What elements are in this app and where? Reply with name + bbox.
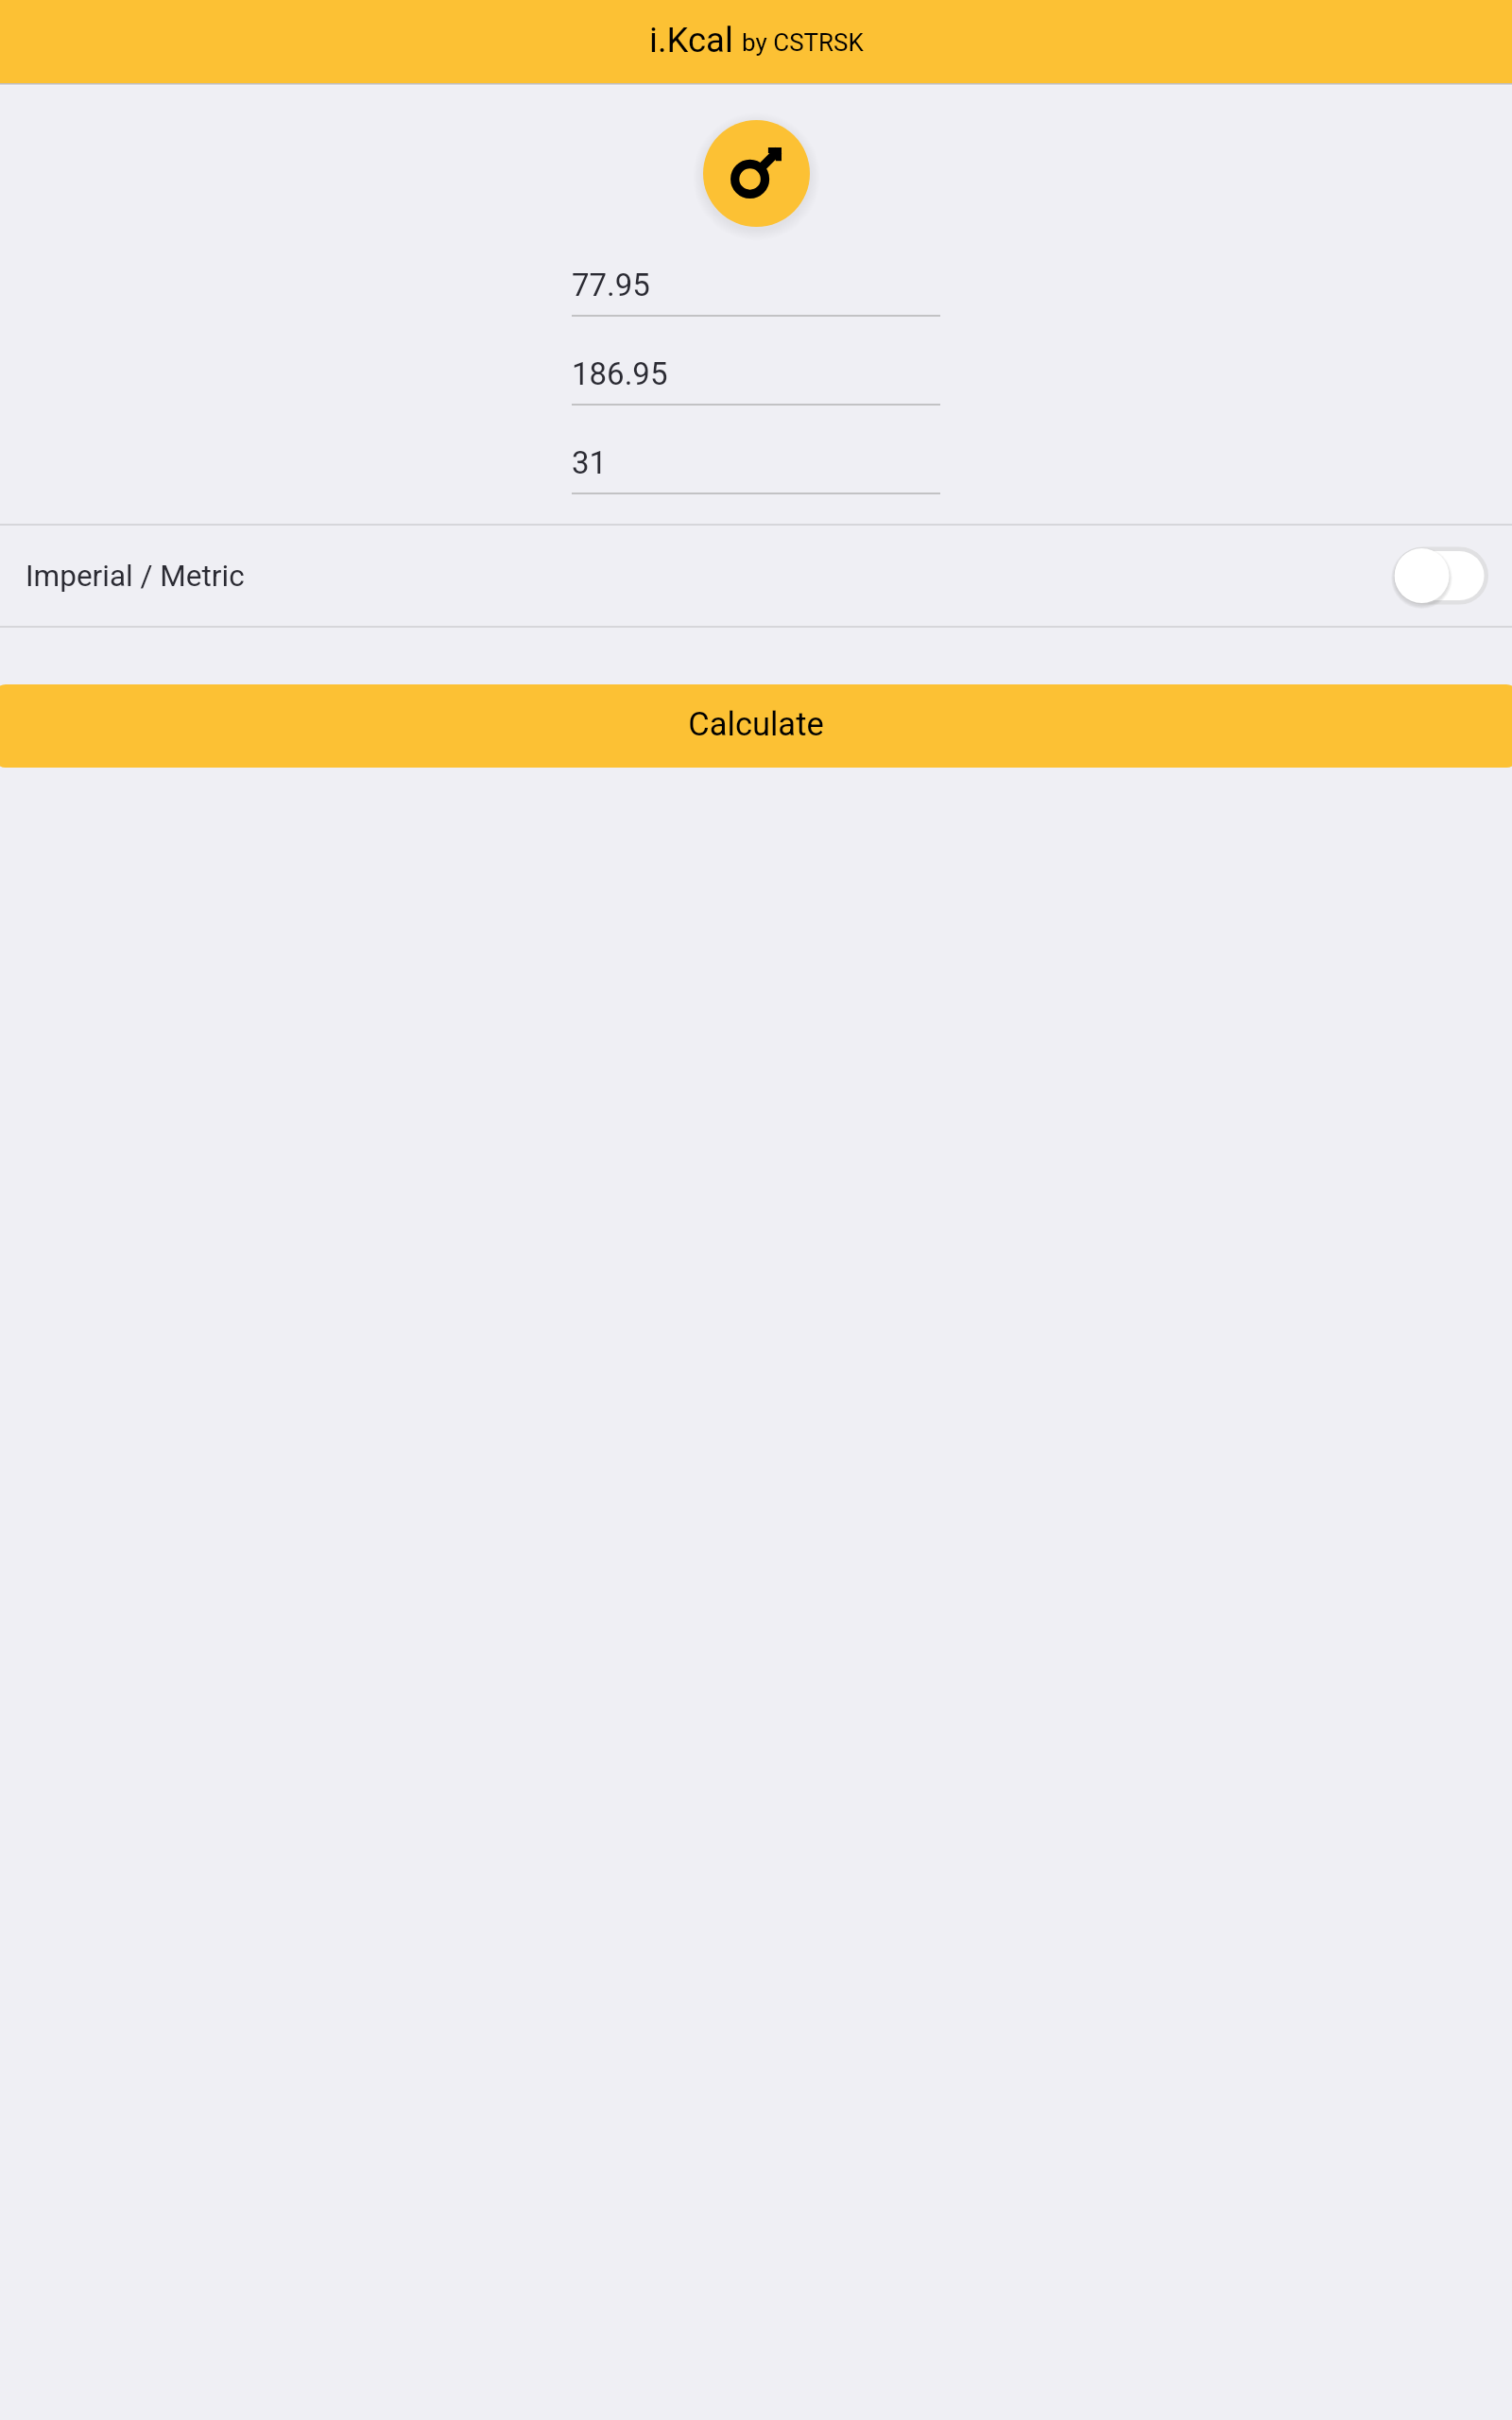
staticText: 186.95: [572, 355, 668, 392]
button[interactable]: Imperial / Metric units toggle, off: [1394, 543, 1490, 609]
staticText: Imperial / Metric: [26, 559, 245, 594]
staticText: i.Kcal: [649, 20, 733, 60]
button[interactable]: Imperial / Metric: [0, 524, 1512, 628]
staticText: 77.95: [572, 267, 650, 303]
staticText: 31: [572, 444, 608, 481]
button[interactable]: Select gender, currently male: [703, 120, 810, 227]
staticText: by CSTRSK: [742, 28, 864, 57]
staticText: Calculate: [688, 705, 824, 743]
button[interactable]: Calculate: [0, 684, 1512, 768]
